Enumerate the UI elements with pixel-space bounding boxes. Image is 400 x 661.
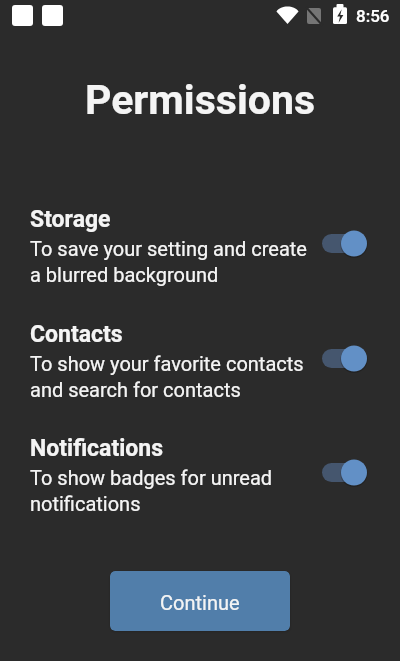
staticText: Contacts <box>30 321 123 348</box>
button[interactable]: Storage <box>0 206 400 294</box>
other: No mobile signal <box>307 8 321 24</box>
staticText: To show your favorite contacts and searc… <box>30 352 304 401</box>
other: Notification <box>12 5 33 26</box>
staticText: Notifications <box>30 435 164 462</box>
staticText: Continue <box>160 591 240 614</box>
button[interactable]: Notifications <box>0 435 400 523</box>
staticText: To save your setting and create a blurre… <box>30 237 307 286</box>
staticText: Permissions <box>0 76 400 124</box>
other: Wi-Fi connected <box>276 6 299 24</box>
staticText: To show badges for unread notifications <box>30 466 273 515</box>
button[interactable]: Storage permission toggle, on <box>322 230 367 257</box>
other: Battery charging <box>333 4 347 24</box>
other: Notification <box>42 5 63 26</box>
staticText: 8:56 <box>356 6 390 26</box>
button[interactable]: Contacts permission toggle, on <box>322 345 367 372</box>
button[interactable]: Contacts <box>0 321 400 409</box>
button[interactable]: Continue <box>110 571 290 631</box>
button[interactable]: Notifications permission toggle, on <box>322 459 367 486</box>
staticText: Storage <box>30 206 111 233</box>
